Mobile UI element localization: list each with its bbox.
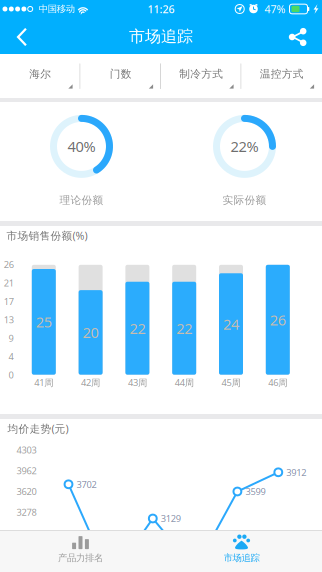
button[interactable]: 海尔	[0, 54, 80, 98]
button[interactable]: 产品力排名	[0, 530, 322, 572]
staticText: 22	[129, 318, 145, 338]
staticText: 3129	[161, 512, 181, 525]
staticText: 42周	[81, 376, 100, 389]
staticText: 26	[270, 310, 286, 329]
staticText: 11:26	[147, 2, 174, 16]
staticText: 理论份额	[59, 194, 103, 207]
button[interactable]: 制冷方式	[161, 54, 241, 98]
staticText: 3962	[16, 464, 36, 477]
button[interactable]: 分享	[0, 20, 322, 54]
staticText: 3599	[245, 485, 265, 498]
staticText: 47%	[264, 2, 285, 16]
button[interactable]: 返回	[0, 20, 322, 54]
staticText: 3912	[286, 466, 306, 478]
staticText: 市场销售份额(%)	[6, 228, 87, 243]
staticText: 43周	[128, 376, 147, 389]
staticText: 21	[4, 277, 14, 289]
staticText: 0	[8, 369, 13, 381]
staticText: 26	[4, 258, 14, 271]
staticText: 均价走势(元)	[7, 421, 68, 436]
staticText: 3702	[76, 478, 96, 490]
staticText: 中国移动	[39, 3, 75, 15]
staticText: 25	[36, 312, 52, 332]
staticText: 海尔	[29, 67, 51, 80]
staticText: 3620	[16, 485, 36, 498]
staticText: 22	[176, 318, 192, 338]
staticText: 产品力排名	[58, 552, 103, 564]
staticText: 20	[83, 323, 99, 342]
button[interactable]: 温控方式	[241, 54, 322, 98]
staticText: 17	[4, 295, 14, 307]
staticText: 实际份额	[222, 194, 266, 207]
button[interactable]: 市场追踪	[0, 530, 322, 572]
staticText: 46周	[268, 376, 287, 389]
staticText: 9	[8, 332, 13, 344]
staticText: 4303	[16, 444, 36, 456]
button[interactable]: 门数	[80, 54, 161, 98]
staticText: 4	[8, 350, 13, 363]
staticText: 温控方式	[260, 67, 304, 80]
staticText: 45周	[221, 376, 240, 389]
staticText: 市场追踪	[223, 552, 259, 564]
staticText: 3278	[16, 506, 36, 518]
staticText: 40%	[67, 137, 95, 156]
staticText: 41周	[34, 376, 53, 389]
staticText: 13	[4, 313, 14, 326]
staticText: 门数	[110, 67, 132, 80]
staticText: 市场追踪	[129, 27, 193, 46]
staticText: 24	[223, 314, 239, 334]
staticText: 44周	[175, 376, 194, 389]
staticText: 制冷方式	[179, 67, 223, 80]
staticText: 22%	[230, 137, 258, 156]
